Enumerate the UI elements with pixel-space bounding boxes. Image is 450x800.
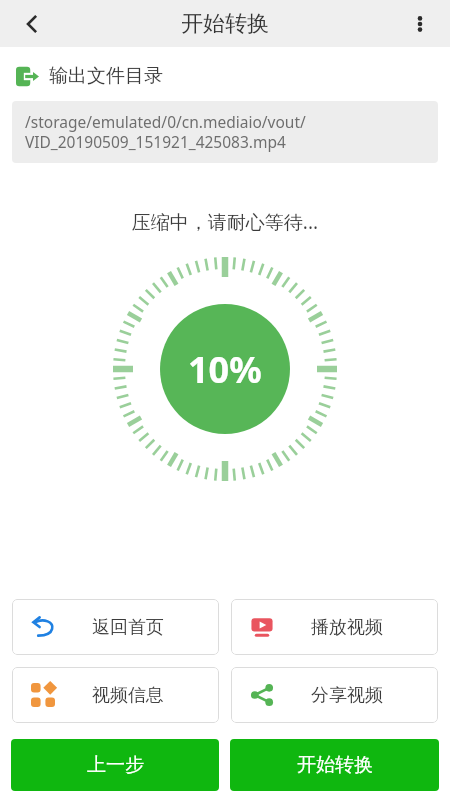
button[interactable]: 播放视频 [231,599,438,655]
staticText: 压缩中，请耐心等待... [0,209,450,235]
staticText: 返回首页 [92,616,164,639]
staticText: 10% [188,345,262,394]
button[interactable]: 返回首页 [12,599,219,655]
staticText: /storage/emulated/0/cn.mediaio/vout/ VID… [25,111,306,153]
button[interactable]: More options [398,2,442,46]
button[interactable]: 开始转换 [230,739,439,791]
button[interactable]: /storage/emulated/0/cn.mediaio/vout/ VID… [12,101,438,163]
staticText: 上一步 [87,753,144,777]
staticText: 开始转换 [181,10,269,38]
staticText: 开始转换 [297,753,373,777]
button[interactable]: 视频信息 [12,667,219,723]
button[interactable]: Back [10,2,54,46]
button[interactable]: 上一步 [11,739,219,791]
staticText: 输出文件目录 [49,64,163,88]
staticText: 视频信息 [92,684,164,707]
button[interactable]: 分享视频 [231,667,438,723]
staticText: 分享视频 [311,684,383,707]
staticText: 播放视频 [311,616,383,639]
